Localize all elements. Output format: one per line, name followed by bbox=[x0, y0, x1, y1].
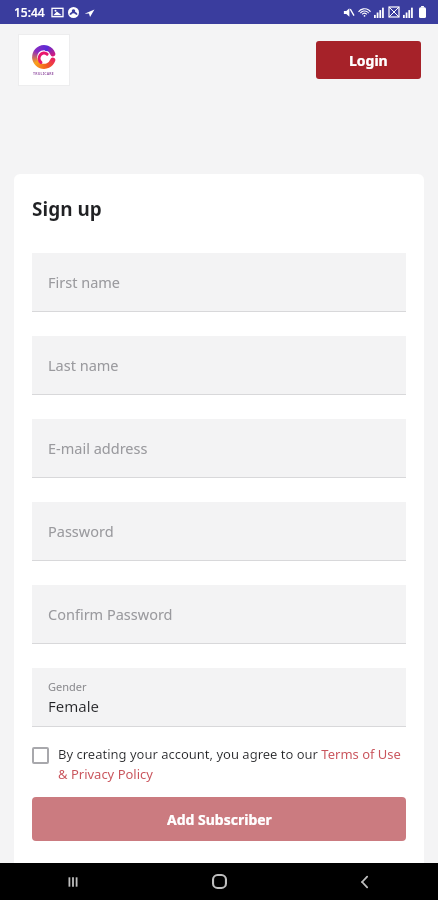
button[interactable]: Home bbox=[146, 863, 292, 900]
staticText: First name bbox=[48, 272, 121, 292]
button[interactable]: Gender bbox=[32, 668, 406, 727]
staticText: By creating your account, you agree to o… bbox=[58, 745, 406, 783]
button[interactable]: E-mail address bbox=[32, 419, 406, 478]
staticText: Add Subscriber bbox=[167, 810, 272, 829]
staticText: TRULICARE bbox=[33, 71, 55, 76]
button[interactable]: Accept terms checkbox bbox=[32, 745, 406, 783]
staticText: Password bbox=[48, 521, 114, 541]
button[interactable]: First name bbox=[32, 253, 406, 312]
staticText: Login bbox=[349, 51, 388, 70]
button[interactable]: Confirm Password bbox=[32, 585, 406, 644]
button[interactable]: Back bbox=[292, 863, 438, 900]
staticText: 15:44 bbox=[14, 4, 45, 20]
staticText: E-mail address bbox=[48, 438, 148, 458]
button[interactable]: Password bbox=[32, 502, 406, 561]
staticText: Sign up bbox=[32, 196, 102, 222]
staticText: Last name bbox=[48, 355, 119, 375]
other: Accept terms checkbox bbox=[32, 747, 49, 764]
staticText: Female bbox=[48, 696, 100, 716]
button[interactable]: Last name bbox=[32, 336, 406, 395]
button[interactable]: Recent apps bbox=[0, 863, 146, 900]
button[interactable]: Add Subscriber bbox=[32, 797, 406, 841]
staticText: Confirm Password bbox=[48, 604, 173, 624]
button[interactable]: Trulicare logo bbox=[18, 34, 70, 86]
button[interactable]: Login bbox=[316, 41, 421, 79]
staticText: Gender bbox=[48, 679, 87, 694]
